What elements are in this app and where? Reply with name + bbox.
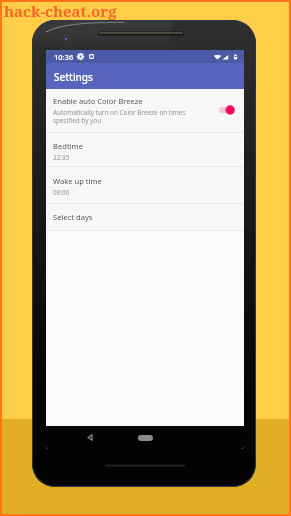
staticText: Wake up time — [53, 176, 102, 186]
staticText: 10:36 — [54, 52, 74, 62]
staticText: Select days — [53, 212, 93, 222]
staticText: Automatically turn on Color Breeze on ti… — [53, 108, 186, 125]
button[interactable]: Back — [84, 431, 97, 444]
staticText: 22:35 — [53, 153, 70, 162]
staticText: 08:00 — [53, 188, 70, 197]
staticText: Bedtime — [53, 141, 83, 151]
staticText: Settings — [54, 70, 93, 84]
button[interactable]: Enable auto Color Breeze — [46, 89, 244, 132]
staticText: hack-cheat.org — [4, 1, 117, 21]
staticText: Enable auto Color Breeze — [53, 96, 143, 106]
button[interactable]: Settings — [46, 63, 244, 89]
button[interactable]: Bedtime — [46, 133, 244, 166]
button[interactable]: Toggle auto Color Breeze — [219, 105, 237, 115]
button[interactable]: Select days — [46, 204, 244, 230]
button[interactable]: Wake up time — [46, 167, 244, 203]
button[interactable]: Home — [138, 435, 153, 441]
